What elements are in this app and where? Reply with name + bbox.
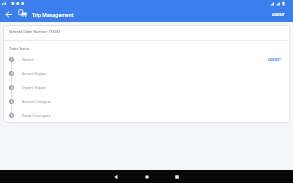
button[interactable] [2, 8, 15, 21]
staticText: 1 [11, 58, 13, 62]
staticText: SUBMIT [268, 57, 281, 61]
staticText: Depart Shipper [22, 85, 47, 90]
staticText: 2 [11, 72, 13, 76]
button[interactable]: SUBMIT [264, 54, 285, 64]
staticText: Order Status [9, 46, 30, 51]
staticText: Depart Consignee [22, 113, 51, 118]
button[interactable] [113, 174, 119, 180]
staticText: 5 [11, 114, 13, 118]
staticText: Trip Management [32, 12, 74, 19]
staticText: Arrived Shipper [22, 71, 47, 76]
staticText: LOGOUT [272, 13, 285, 17]
button[interactable] [174, 174, 180, 180]
staticText: Started [22, 57, 34, 62]
staticText: Arrived Consignee [22, 99, 52, 104]
button[interactable]: LOGOUT [267, 10, 290, 20]
staticText: 4 [11, 100, 13, 104]
staticText: 3 [11, 86, 13, 90]
staticText: Selected Order Number: 733933 [9, 29, 61, 34]
button[interactable] [144, 174, 150, 180]
